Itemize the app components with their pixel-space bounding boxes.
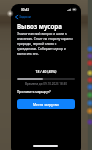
button[interactable]: Back: [11, 13, 81, 20]
staticText: Экологический вопрос и шаги к спасению. …: [17, 32, 75, 56]
staticText: Вывоз мусора: [17, 22, 62, 30]
staticText: Проложить маршрут?: [17, 90, 51, 94]
staticText: 00:43: [21, 8, 30, 12]
button[interactable]: Места загрузки: [17, 99, 75, 109]
staticText: 18 / 40 (45%): [17, 69, 75, 74]
staticText: Места загрузки: [33, 102, 59, 107]
staticText: Времени до 09.10.2023 18:30: [17, 82, 75, 86]
staticText: Задачи: [19, 14, 31, 19]
